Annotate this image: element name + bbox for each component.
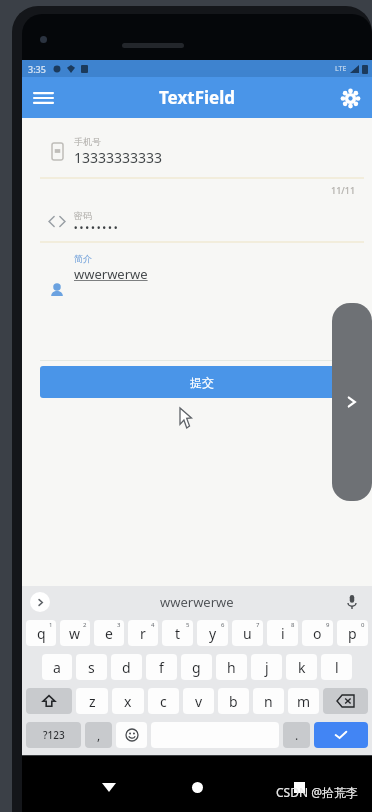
staticText: 提交 — [190, 375, 214, 390]
button[interactable]: w — [60, 620, 90, 646]
staticText: ?123 — [43, 728, 65, 742]
button[interactable]: 提交 — [40, 366, 364, 398]
staticText: m — [297, 692, 311, 711]
staticText: v — [195, 692, 203, 711]
staticText: 简介 — [74, 253, 92, 264]
button[interactable]: Shift — [26, 688, 72, 714]
staticText: 2 — [83, 621, 87, 629]
button[interactable]: k — [286, 654, 317, 680]
staticText: 0 — [361, 621, 365, 629]
button[interactable]: 简介 — [40, 253, 362, 298]
staticText: 5 — [186, 621, 190, 629]
staticText: g — [192, 658, 201, 677]
staticText: q — [37, 624, 46, 643]
staticText: o — [313, 624, 322, 643]
button[interactable]: Comma — [85, 722, 112, 748]
button[interactable]: e — [94, 620, 124, 646]
button[interactable]: Period — [283, 722, 310, 748]
button[interactable]: j — [251, 654, 282, 680]
button[interactable]: y — [197, 620, 228, 646]
button[interactable]: l — [321, 654, 352, 680]
button[interactable]: Home — [182, 772, 212, 802]
staticText: e — [105, 624, 113, 643]
staticText: TextField — [159, 86, 236, 109]
staticText: w — [69, 624, 81, 643]
staticText: n — [264, 692, 273, 711]
staticText: 3 — [117, 621, 121, 629]
button[interactable]: n — [253, 688, 284, 714]
staticText: d — [122, 658, 131, 677]
button[interactable]: More suggestions — [30, 592, 50, 612]
staticText: k — [298, 658, 306, 677]
staticText: 密码 — [74, 210, 92, 221]
button[interactable]: a — [42, 654, 72, 680]
staticText: h — [227, 658, 236, 677]
staticText: y — [209, 624, 217, 643]
staticText: 7 — [256, 621, 260, 629]
button[interactable]: v — [183, 688, 214, 714]
button[interactable]: i — [267, 620, 298, 646]
staticText: 6 — [221, 621, 225, 629]
button[interactable]: f — [146, 654, 177, 680]
staticText: u — [243, 624, 252, 643]
staticText: j — [265, 658, 269, 677]
button[interactable]: Expand panel — [332, 303, 372, 501]
staticText: 4 — [151, 621, 155, 629]
staticText: 1 — [49, 621, 53, 629]
staticText: • • • • • • • • — [74, 221, 118, 233]
button[interactable]: 密码 — [40, 210, 362, 233]
button[interactable]: q — [26, 620, 56, 646]
button[interactable]: 手机号 — [40, 136, 362, 167]
staticText: r — [140, 624, 146, 643]
button[interactable]: z — [76, 688, 108, 714]
button[interactable]: Enter — [314, 722, 368, 748]
staticText: i — [281, 624, 285, 643]
button[interactable]: Symbols — [26, 722, 81, 748]
button[interactable]: b — [218, 688, 249, 714]
button[interactable]: Back — [94, 772, 124, 802]
staticText: b — [229, 692, 238, 711]
button[interactable]: d — [111, 654, 142, 680]
staticText: . — [295, 727, 299, 743]
staticText: 8 — [291, 621, 295, 629]
button[interactable]: t — [162, 620, 193, 646]
button[interactable]: Recents — [284, 772, 314, 802]
staticText: a — [53, 658, 61, 677]
staticText: 11/11 — [331, 184, 356, 196]
staticText: t — [175, 624, 181, 643]
staticText: 3:35 — [28, 63, 46, 75]
button[interactable]: g — [181, 654, 212, 680]
button[interactable]: m — [288, 688, 319, 714]
staticText: wwerwerwe — [160, 593, 234, 611]
button[interactable]: Menu — [22, 77, 64, 118]
staticText: , — [97, 727, 101, 743]
staticText: 13333333333 — [74, 148, 163, 167]
button[interactable]: Voice input — [342, 592, 362, 612]
button[interactable]: c — [148, 688, 179, 714]
staticText: l — [335, 658, 339, 677]
staticText: f — [159, 658, 164, 677]
button[interactable]: x — [112, 688, 144, 714]
button[interactable]: u — [232, 620, 263, 646]
staticText: p — [348, 624, 357, 643]
button[interactable]: p — [337, 620, 368, 646]
staticText: s — [88, 658, 95, 677]
staticText: wwerwerwe — [74, 265, 148, 283]
staticText: CSDN @拾荒李 — [276, 784, 358, 800]
staticText: z — [89, 692, 96, 711]
button[interactable]: Settings — [330, 78, 370, 118]
button[interactable]: Backspace — [323, 688, 368, 714]
button[interactable]: Emoji — [116, 722, 147, 748]
staticText: x — [124, 692, 132, 711]
button[interactable]: s — [76, 654, 107, 680]
staticText: 9 — [326, 621, 330, 629]
button[interactable]: h — [216, 654, 247, 680]
button[interactable]: r — [128, 620, 158, 646]
staticText: 手机号 — [74, 136, 101, 147]
button[interactable]: o — [302, 620, 333, 646]
staticText: c — [160, 692, 167, 711]
staticText: LTE — [335, 64, 347, 74]
